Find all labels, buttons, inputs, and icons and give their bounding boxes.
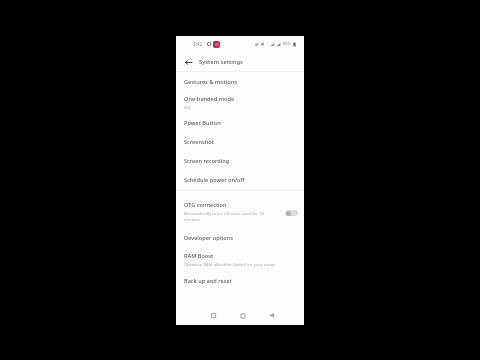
button[interactable]: Back up and reset — [176, 271, 304, 290]
button[interactable]: One-handed mode — [176, 91, 304, 113]
staticText: Optimize RAM allocation based on your us… — [184, 261, 276, 267]
button[interactable]: RAM Boost — [176, 247, 304, 271]
staticText: One-handed mode — [184, 95, 235, 103]
staticText: Screen recording — [184, 157, 230, 165]
button[interactable]: Recents — [199, 308, 228, 323]
button[interactable]: Developer options — [176, 229, 304, 247]
staticText: OTG connection — [184, 201, 227, 209]
button[interactable]: OTG connection toggle — [285, 210, 298, 216]
staticText: System settings — [199, 58, 243, 66]
staticText: RAM Boost — [184, 252, 214, 260]
button[interactable]: Power Button — [176, 113, 304, 132]
staticText: Gestures & motions — [184, 78, 237, 86]
staticText: Off — [184, 104, 191, 110]
button[interactable]: Home — [228, 308, 257, 323]
button[interactable]: OTG connection — [176, 191, 304, 229]
staticText: Screenshot — [184, 138, 214, 146]
staticText: 3:42 — [193, 41, 203, 47]
staticText: Back up and reset — [184, 277, 232, 285]
staticText: Power Button — [184, 119, 221, 127]
button[interactable]: Schedule power on/off — [176, 170, 304, 189]
staticText: Automatically turns off once used for 10… — [184, 210, 267, 223]
staticText: Schedule power on/off — [184, 176, 245, 184]
button[interactable]: Screenshot — [176, 132, 304, 151]
button[interactable]: Gestures & motions — [176, 73, 304, 91]
button[interactable]: Screen recording — [176, 151, 304, 170]
button[interactable]: Back — [257, 308, 286, 323]
staticText: 85% — [283, 41, 292, 47]
staticText: Developer options — [184, 234, 233, 242]
button[interactable]: Back — [183, 57, 193, 67]
